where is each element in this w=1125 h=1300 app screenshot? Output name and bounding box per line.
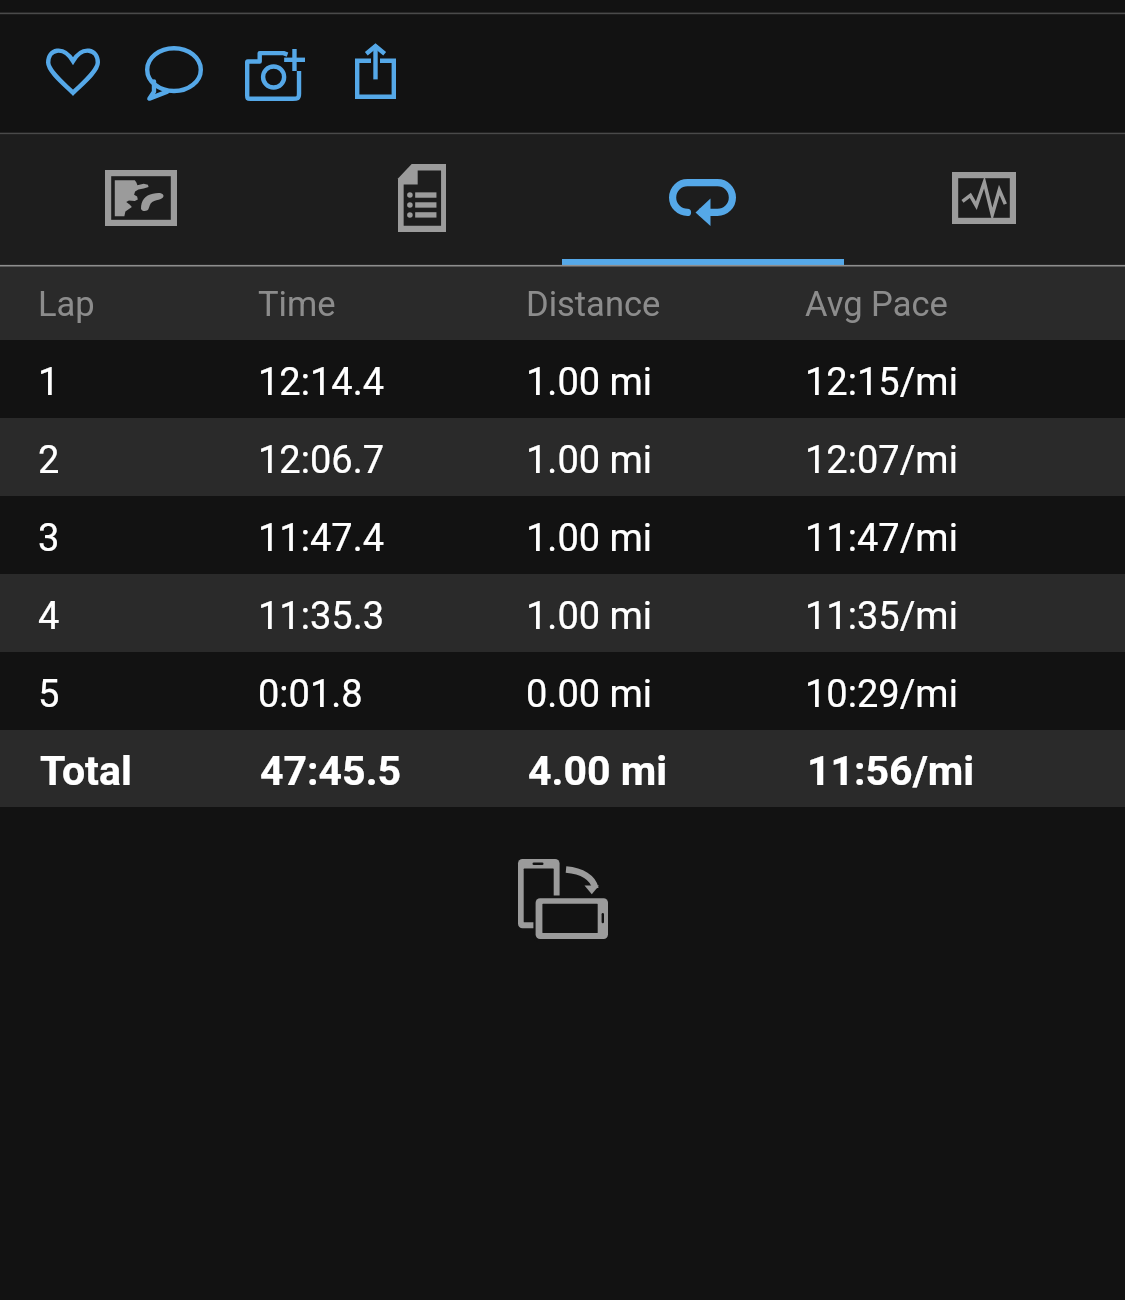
staticText: 12:07/mi	[805, 438, 958, 483]
button[interactable]: Laps	[562, 135, 843, 265]
staticText: 5	[38, 672, 60, 717]
staticText: 11:47.4	[258, 516, 385, 561]
button[interactable]: 1	[0, 340, 1125, 418]
button[interactable]: Add photo	[224, 16, 325, 133]
staticText: Time	[258, 284, 336, 324]
staticText: 1	[38, 360, 60, 405]
staticText: 11:35/mi	[805, 594, 958, 639]
staticText: 1.00 mi	[526, 594, 653, 639]
staticText: 11:56/mi	[807, 747, 975, 795]
button[interactable]: Like	[22, 16, 123, 133]
staticText: Total	[40, 747, 132, 795]
staticText: 47:45.5	[260, 747, 402, 795]
staticText: 3	[38, 516, 60, 561]
staticText: 10:29/mi	[805, 672, 958, 717]
staticText: 2	[38, 438, 60, 483]
staticText: 0.00 mi	[526, 672, 653, 717]
staticText: Distance	[526, 284, 661, 324]
staticText: 4	[38, 594, 60, 639]
button[interactable]: Map	[0, 135, 281, 265]
button[interactable]: Lap	[0, 267, 1125, 340]
button[interactable]: Details	[281, 135, 562, 265]
staticText: 11:47/mi	[805, 516, 958, 561]
button[interactable]: 2	[0, 418, 1125, 496]
staticText: 4.00 mi	[528, 747, 668, 795]
staticText: 12:15/mi	[805, 360, 958, 405]
staticText: 12:14.4	[258, 360, 385, 405]
button[interactable]: Share	[325, 16, 426, 133]
staticText: 1.00 mi	[526, 516, 653, 561]
staticText: 1.00 mi	[526, 360, 653, 405]
staticText: Avg Pace	[805, 284, 948, 324]
button[interactable]: 5	[0, 652, 1125, 730]
staticText: 0:01.8	[258, 672, 363, 717]
button[interactable]: 4	[0, 574, 1125, 652]
staticText: Lap	[38, 284, 95, 324]
staticText: 11:35.3	[258, 594, 385, 639]
button[interactable]: Total	[0, 730, 1125, 807]
button[interactable]: Comment	[123, 16, 224, 133]
button[interactable]: 3	[0, 496, 1125, 574]
staticText: 12:06.7	[258, 438, 385, 483]
button[interactable]: Analysis	[843, 135, 1124, 265]
staticText: 1.00 mi	[526, 438, 653, 483]
